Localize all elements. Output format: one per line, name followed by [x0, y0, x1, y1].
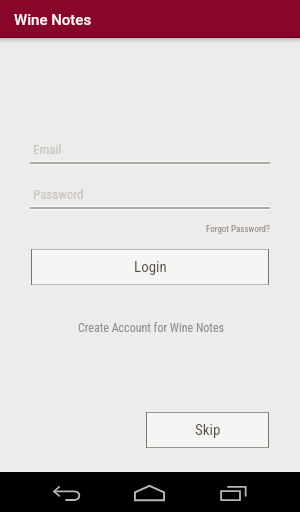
button[interactable]: Forgot Password?	[200, 224, 274, 235]
button[interactable]: Create Account for Wine Notes	[72, 318, 231, 338]
staticText: Forgot Password?	[206, 224, 270, 235]
button[interactable]: Password	[30, 181, 270, 212]
staticText: Password	[33, 187, 84, 202]
button[interactable]: Home	[128, 473, 170, 512]
staticText: Login	[134, 258, 167, 276]
button[interactable]: Login	[31, 249, 269, 285]
staticText: Skip	[195, 421, 221, 439]
button[interactable]: Recents	[212, 473, 254, 512]
button[interactable]: Skip	[146, 412, 269, 448]
button[interactable]: Email	[30, 136, 270, 167]
staticText: Create Account for Wine Notes	[78, 321, 225, 335]
button[interactable]: Back	[46, 473, 88, 512]
staticText: Email	[33, 142, 62, 157]
staticText: Wine Notes	[14, 11, 92, 29]
